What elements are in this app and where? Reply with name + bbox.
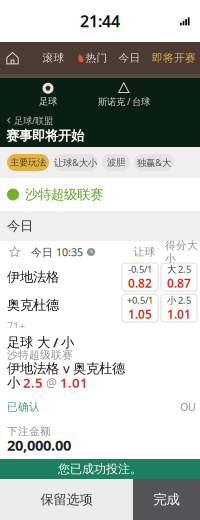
staticText: 0.87 [167, 275, 191, 291]
button[interactable]: 保留选项 [0, 479, 133, 520]
button[interactable]: 即将开赛 [150, 42, 198, 74]
staticText: 足球 大 / 小 [7, 333, 74, 351]
staticText: 沙特超级联赛 [25, 186, 103, 203]
staticText: 独赢&大 [137, 156, 171, 169]
staticText: 得分大小 [165, 239, 198, 265]
staticText: 大 2.5 [167, 263, 191, 275]
staticText: 沙特超级联赛 [7, 348, 73, 361]
staticText: 下注金额 [7, 425, 51, 438]
button[interactable]: 小 2.5 [161, 294, 197, 322]
staticText: 1.05 [128, 306, 152, 322]
staticText: 伊地法格 v 奥克杜德 [7, 359, 125, 377]
staticText: @ [46, 374, 57, 390]
staticText: 71+ [7, 319, 25, 333]
staticText: 热门 [85, 51, 107, 64]
staticText: OU [180, 400, 196, 414]
button[interactable]: 斯诺克 / 台球 [96, 82, 152, 108]
button[interactable]: 首页 [0, 42, 25, 74]
button[interactable]: 独赢&大 [134, 154, 174, 171]
button[interactable]: 足球 [0, 82, 96, 108]
staticText: 小 2.5 [167, 294, 191, 306]
staticText: 今日 [118, 51, 140, 64]
staticText: 让球 [133, 245, 155, 258]
button[interactable]: 滚球 [25, 42, 75, 74]
button[interactable]: 波胆 [102, 154, 130, 171]
staticText: 0.82 [128, 275, 152, 291]
staticText: 斯诺克 / 台球 [98, 95, 150, 108]
staticText: 主要玩法 [10, 157, 46, 168]
button[interactable]: 大 2.5 [161, 263, 197, 291]
button[interactable]: 让球&大小 [53, 154, 98, 171]
staticText: 即将开赛 [152, 51, 196, 64]
staticText: 奥克杜德 [7, 297, 59, 313]
staticText: 赛事即将开始 [6, 128, 84, 144]
button[interactable]: 收藏 [7, 245, 23, 259]
button[interactable]: 足球/联盟 [0, 114, 53, 127]
staticText: +0.5/1 [127, 294, 153, 306]
staticText: 完成 [153, 491, 179, 508]
staticText: 滚球 [42, 51, 64, 64]
staticText: 20,000.00 [7, 435, 71, 455]
staticText: 小 [7, 374, 20, 391]
staticText: 伊地法格 [7, 269, 59, 285]
staticText: 您已成功投注。 [58, 462, 142, 476]
button[interactable]: 今日 [109, 42, 150, 74]
staticText: 足球/联盟 [14, 114, 53, 127]
staticText: 足球 [39, 96, 57, 107]
staticText: 21:44 [80, 10, 120, 32]
button[interactable]: 热门 [75, 42, 109, 74]
staticText: 让球&大小 [54, 156, 97, 169]
button[interactable]: -0.5/1 [122, 263, 158, 291]
staticText: 1.01 [167, 306, 191, 322]
staticText: 保留选项 [40, 491, 92, 508]
button[interactable]: 主要玩法 [7, 154, 49, 171]
staticText: -0.5/1 [128, 263, 152, 275]
staticText: 今日 10:35 [31, 245, 83, 259]
staticText: 已确认 [7, 400, 40, 413]
staticText: 今日 [7, 218, 33, 234]
button[interactable]: +0.5/1 [122, 294, 158, 322]
staticText: 波胆 [107, 157, 125, 168]
staticText: 2.5 [23, 374, 43, 391]
button[interactable]: 完成 [133, 479, 200, 520]
staticText: 1.01 [60, 374, 88, 391]
